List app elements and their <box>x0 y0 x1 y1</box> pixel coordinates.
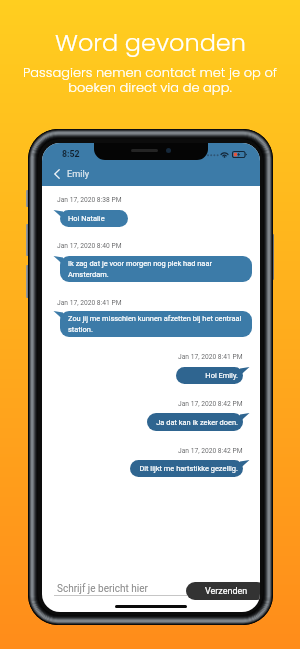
button[interactable]: Hoi Emily. <box>176 367 243 384</box>
button[interactable]: Zou jij me misschien kunnen afzetten bij… <box>60 311 252 337</box>
staticText: Jan 17, 2020 8:38 PM <box>57 196 122 204</box>
staticText: Ja dat kan ik zeker doen. <box>153 418 238 427</box>
staticText: Emily <box>67 168 90 179</box>
staticText: Jan 17, 2020 8:41 PM <box>57 299 122 307</box>
staticText: Schrijf je bericht hier <box>57 583 148 595</box>
staticText: Jan 17, 2020 8:42 PM <box>178 400 243 408</box>
staticText: Jan 17, 2020 8:42 PM <box>178 447 243 455</box>
staticText: Dit lijkt me hartstikke gezellig. <box>136 464 238 473</box>
button[interactable]: Ik zag dat je voor morgen nog plek had n… <box>60 256 252 282</box>
button[interactable]: Dit lijkt me hartstikke gezellig. <box>130 460 243 477</box>
staticText: Verzenden <box>205 586 248 597</box>
staticText: Jan 17, 2020 8:41 PM <box>178 353 243 361</box>
button[interactable]: Back <box>48 165 65 182</box>
staticText: Passagiers nemen contact met je op of bo… <box>23 63 277 97</box>
staticText: Ik zag dat je voor morgen nog plek had n… <box>68 259 244 279</box>
staticText: Word gevonden <box>55 26 246 60</box>
staticText: Zou jij me misschien kunnen afzetten bij… <box>68 314 244 334</box>
staticText: 8:52 <box>62 149 80 159</box>
button[interactable]: Verzenden <box>186 582 260 600</box>
staticText: Hoi Emily. <box>182 371 238 380</box>
staticText: Jan 17, 2020 8:40 PM <box>57 242 122 250</box>
button[interactable]: Ja dat kan ik zeker doen. <box>147 413 243 431</box>
staticText: Hoi Natalie <box>68 214 120 223</box>
button[interactable]: Hoi Natalie <box>60 210 128 227</box>
